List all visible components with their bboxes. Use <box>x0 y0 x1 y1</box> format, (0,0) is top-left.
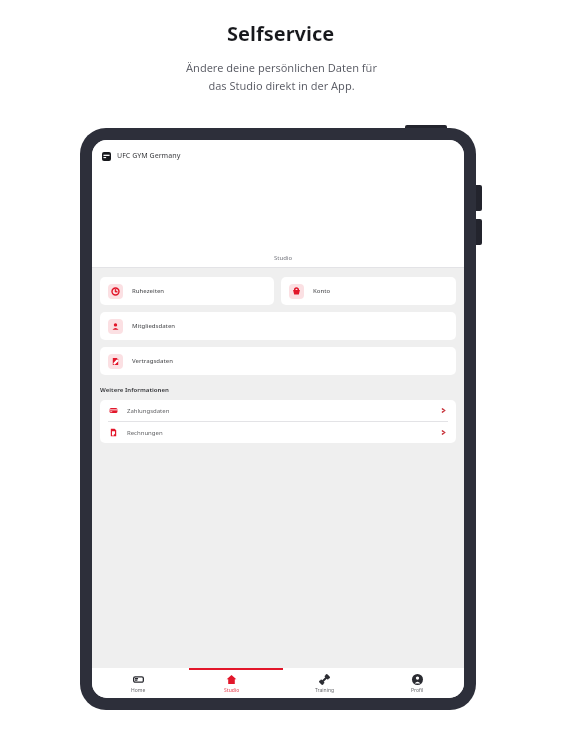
staticText: Ruhezeiten <box>132 287 165 295</box>
staticText: Studio <box>224 687 240 694</box>
staticText: Home <box>131 687 146 694</box>
staticText: Profil <box>411 687 424 694</box>
button[interactable]: Konto <box>281 277 456 305</box>
button[interactable]: Home <box>92 670 185 698</box>
button[interactable]: Training <box>278 670 371 698</box>
staticText: Zahlungsdaten <box>127 407 440 415</box>
staticText: UFC GYM Germany <box>117 151 181 161</box>
button[interactable]: Vertragsdaten <box>100 347 456 375</box>
button[interactable]: Profil <box>371 670 464 698</box>
staticText: Selfservice <box>227 20 335 47</box>
staticText: Ändere deine persönlichen Daten für <box>186 60 377 75</box>
button[interactable]: Studio <box>102 254 464 267</box>
staticText: Weitere Informationen <box>100 386 169 394</box>
button[interactable]: Studio <box>185 670 278 698</box>
staticText: das Studio direkt in der App. <box>208 78 355 93</box>
button[interactable]: Ruhezeiten <box>100 277 274 305</box>
staticText: Studio <box>274 254 293 262</box>
staticText: Training <box>315 687 335 694</box>
staticText: Vertragsdaten <box>132 357 173 365</box>
staticText: Konto <box>313 287 331 295</box>
staticText: Rechnungen <box>127 429 440 437</box>
button[interactable]: Zahlungsdaten <box>100 400 456 421</box>
staticText: Mitgliedsdaten <box>132 322 176 330</box>
button[interactable]: Mitgliedsdaten <box>100 312 456 340</box>
button[interactable]: Rechnungen <box>100 422 456 443</box>
